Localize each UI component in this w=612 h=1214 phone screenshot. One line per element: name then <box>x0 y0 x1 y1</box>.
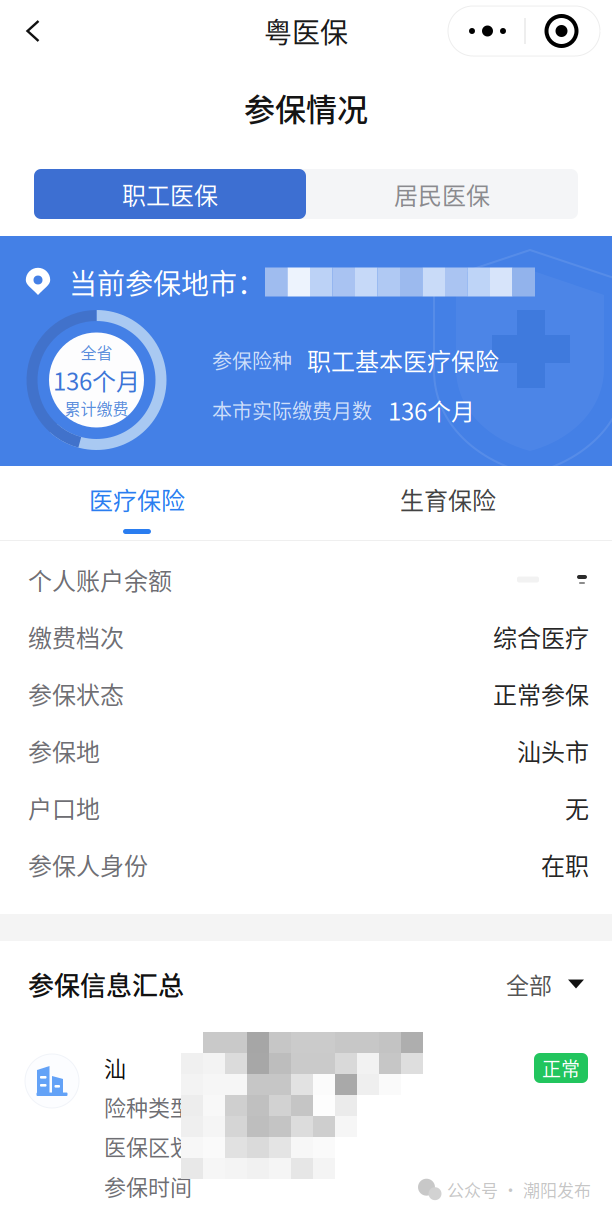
button[interactable]: 医疗保险 <box>48 468 226 534</box>
staticText: 参保人身份 <box>28 847 148 882</box>
staticText: 参保状态 <box>28 676 124 711</box>
staticText: 险种类型 <box>104 1091 192 1122</box>
button[interactable]: 生育保险 <box>359 479 537 519</box>
staticText: 参保信息汇总 <box>28 965 184 1003</box>
button[interactable]: 正常 <box>534 1053 588 1083</box>
staticText: 在职 <box>541 847 589 882</box>
staticText: 136个月 <box>53 363 140 397</box>
button[interactable]: 全部 <box>506 967 584 1001</box>
staticText: 综合医疗 <box>493 619 589 654</box>
staticText: 医疗保险 <box>89 482 185 516</box>
staticText: 参保情况 <box>244 85 368 130</box>
staticText: 全部 <box>506 967 552 1001</box>
staticText: 本市实际缴费月数 <box>212 395 372 424</box>
staticText: 医保区划 <box>104 1130 192 1162</box>
button[interactable]: 居民医保 <box>306 169 578 219</box>
staticText: 136个月 <box>388 393 475 427</box>
staticText: 累计缴费 <box>64 396 128 420</box>
staticText: 粤医保 <box>264 11 348 51</box>
staticText: 公众号 · 潮阳发布 <box>447 1177 591 1202</box>
staticText: 无 <box>565 790 589 825</box>
staticText: 汕头市 <box>517 733 589 768</box>
button[interactable]: 返回 <box>0 0 66 62</box>
button[interactable]: 更多 <box>448 6 600 56</box>
staticText: 当前参保地市： <box>69 262 265 302</box>
staticText: 参保时间 <box>104 1170 192 1202</box>
button[interactable]: 职工医保 <box>34 169 306 219</box>
staticText: 职工医保 <box>122 177 218 211</box>
staticText: 户口地 <box>28 790 100 825</box>
staticText: 缴费档次 <box>28 619 124 654</box>
staticText: 参保地 <box>28 733 100 768</box>
staticText: 居民医保 <box>394 177 490 211</box>
staticText: 全省 <box>80 340 112 364</box>
staticText: 正常 <box>542 1054 580 1082</box>
staticText: 正常参保 <box>493 676 589 711</box>
staticText: 职工基本医疗保险 <box>307 343 499 377</box>
staticText: 汕 <box>104 1052 126 1083</box>
staticText: 个人账户余额 <box>28 562 172 597</box>
staticText: 生育保险 <box>400 482 496 516</box>
staticText: 参保险种 <box>212 345 292 374</box>
